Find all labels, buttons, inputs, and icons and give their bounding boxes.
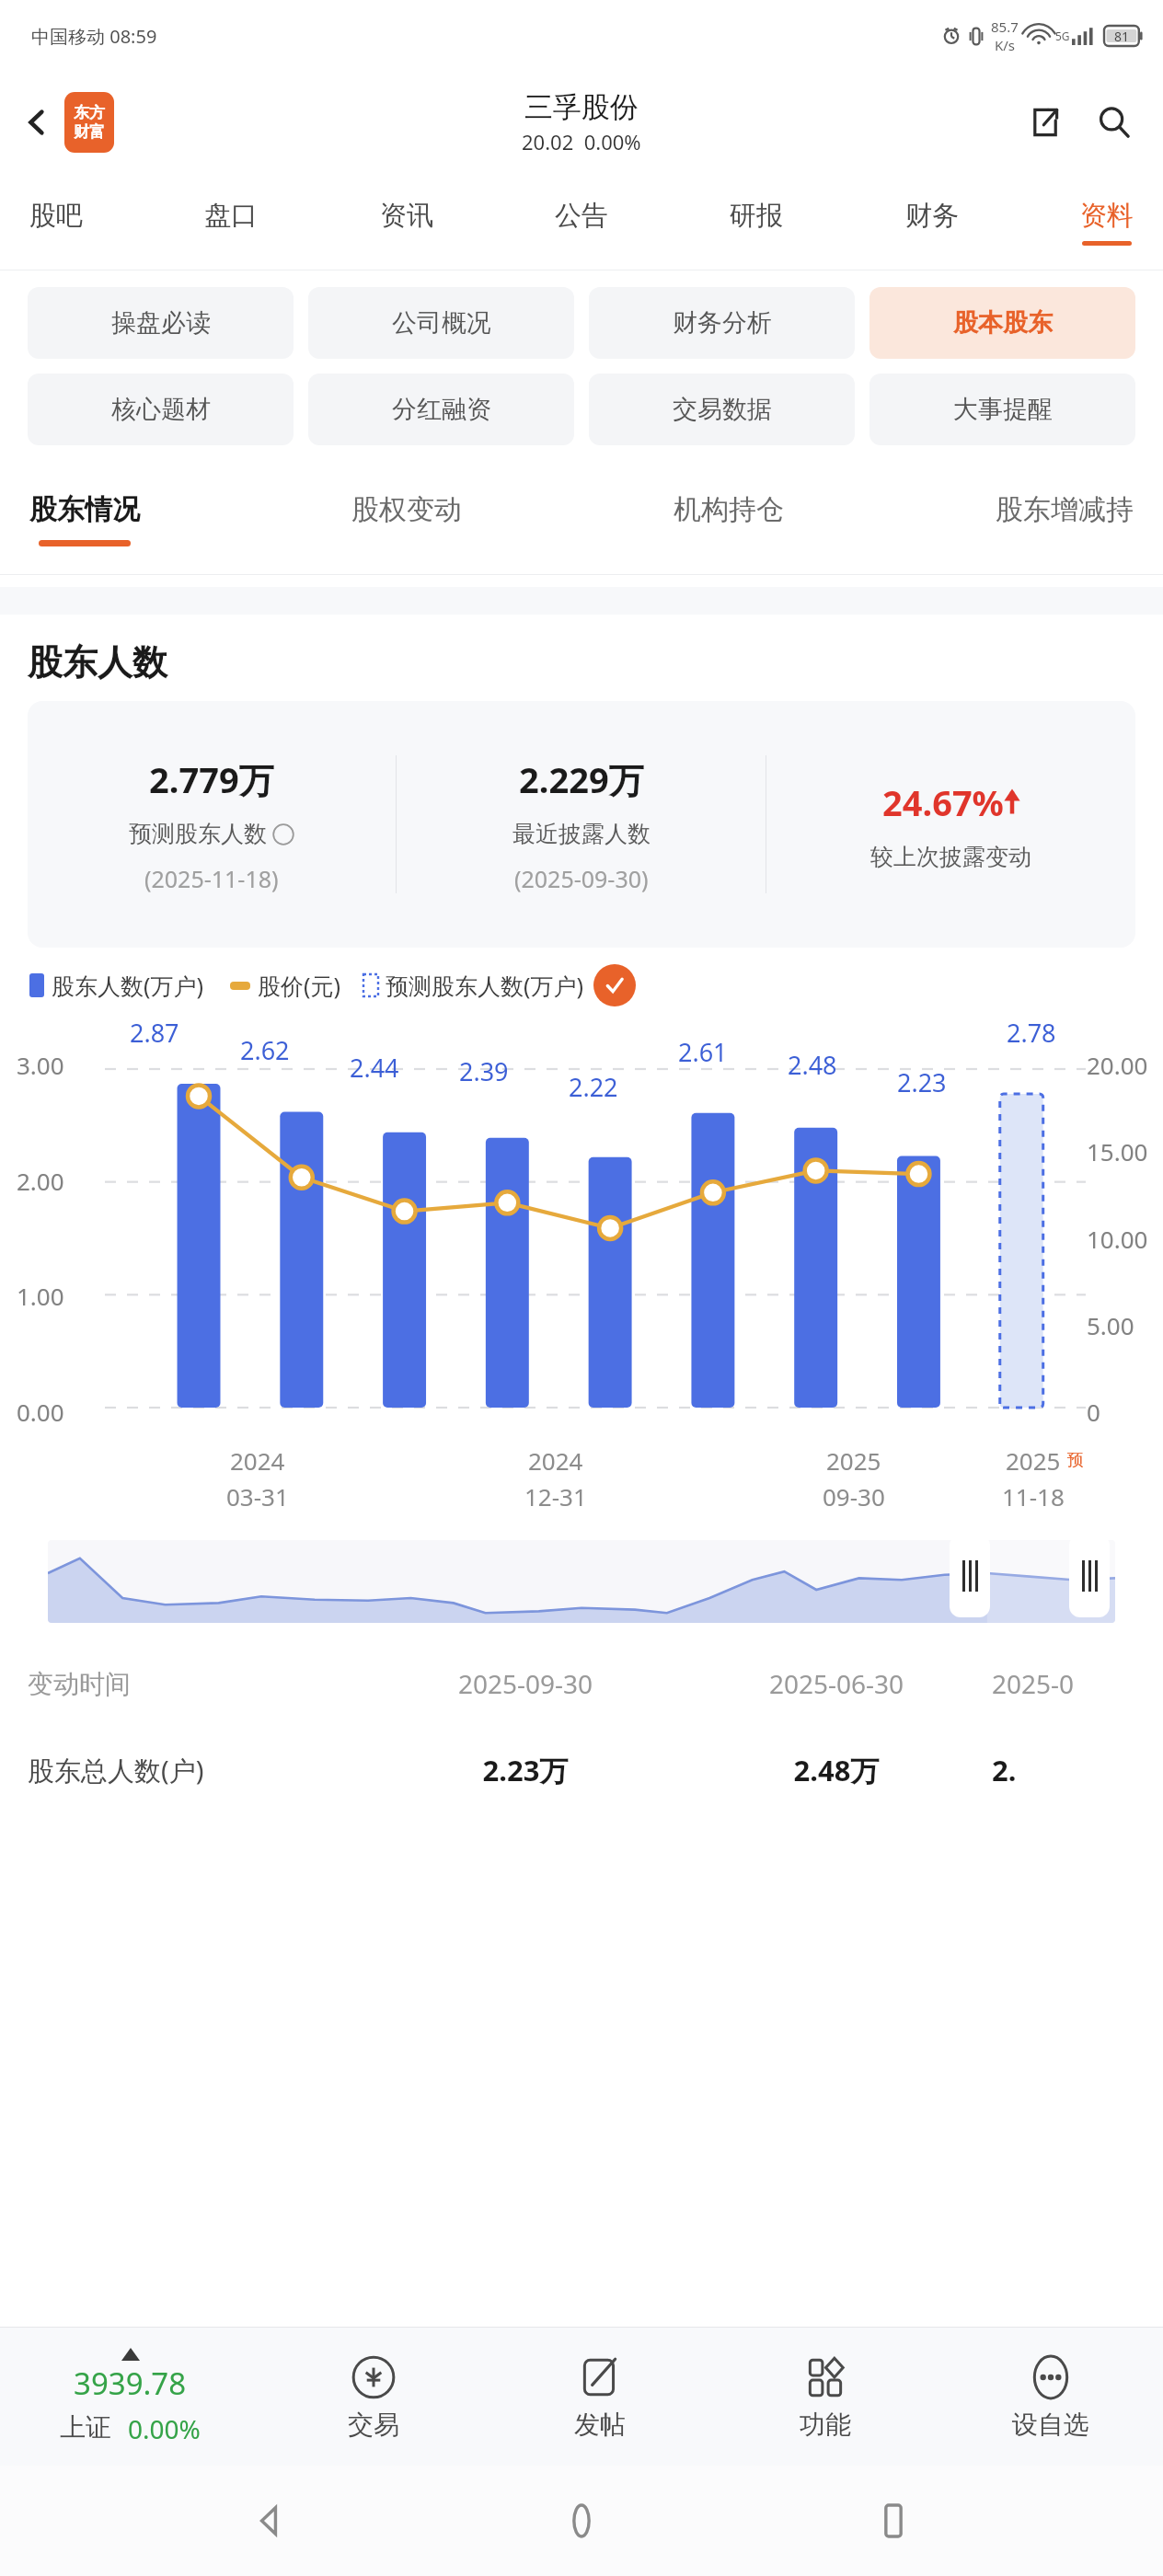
- staticText: 2.23万: [370, 1751, 681, 1789]
- staticText: 中国移动 08:59: [31, 24, 157, 49]
- staticText: 81: [1114, 28, 1130, 45]
- staticText: 预测股东人数: [129, 820, 267, 848]
- button[interactable]: 3939.78: [0, 2328, 260, 2466]
- staticText: 2.22: [569, 1070, 618, 1104]
- staticText: 24.67%: [882, 778, 1004, 826]
- button[interactable]: 分红融资: [308, 374, 574, 445]
- staticText: 15.00: [1087, 1135, 1148, 1167]
- staticText: 东方: [74, 103, 105, 122]
- staticText: 分红融资: [392, 394, 491, 425]
- staticText: 20.00: [1087, 1049, 1148, 1081]
- staticText: 2.779万: [149, 755, 274, 803]
- button[interactable]: Recents: [852, 2479, 935, 2562]
- button[interactable]: East Money: [64, 92, 114, 153]
- staticText: 机构持仓: [674, 492, 784, 527]
- button[interactable]: 股本股东: [869, 287, 1135, 359]
- staticText: 研报: [730, 199, 783, 233]
- button[interactable]: Range selector: [48, 1540, 1115, 1623]
- staticText: 5.00: [1087, 1309, 1134, 1341]
- button[interactable]: 操盘必读: [28, 287, 294, 359]
- staticText: 3.00: [17, 1049, 64, 1081]
- button[interactable]: 核心题材: [28, 374, 294, 445]
- button[interactable]: 盘口: [199, 199, 263, 246]
- staticText: 2.48万: [681, 1751, 992, 1789]
- staticText: 5G: [1055, 29, 1070, 43]
- button[interactable]: 公告: [549, 199, 614, 246]
- staticText: 2.62: [240, 1033, 290, 1067]
- staticText: 11-18: [1002, 1480, 1065, 1512]
- staticText: 股东增减持: [996, 492, 1134, 527]
- staticText: 财富: [74, 122, 105, 142]
- staticText: 三孚股份: [524, 89, 639, 125]
- button[interactable]: 研报: [724, 199, 789, 246]
- staticText: 较上次披露变动: [870, 843, 1031, 871]
- button[interactable]: Home: [540, 2479, 623, 2562]
- staticText: 预: [1067, 1450, 1084, 1471]
- button[interactable]: 设自选: [938, 2328, 1163, 2466]
- staticText: (2025-09-30): [514, 863, 649, 894]
- button[interactable]: Back: [13, 98, 61, 146]
- staticText: 资讯: [380, 199, 433, 233]
- staticText: 2.00: [17, 1165, 64, 1197]
- button[interactable]: 机构持仓: [670, 492, 788, 546]
- staticText: 2.48: [788, 1048, 837, 1082]
- button[interactable]: 大事提醒: [869, 374, 1135, 445]
- button[interactable]: Share: [1016, 94, 1073, 151]
- button[interactable]: Back: [229, 2479, 312, 2562]
- staticText: 股东情况: [29, 492, 140, 527]
- staticText: 2025-09-30: [370, 1666, 681, 1701]
- button[interactable]: 交易: [260, 2328, 487, 2466]
- staticText: 2024: [230, 1444, 285, 1477]
- button[interactable]: 财务: [900, 199, 964, 246]
- staticText: 资料: [1080, 199, 1134, 233]
- staticText: K/s: [995, 36, 1016, 54]
- staticText: 财务: [905, 199, 959, 233]
- staticText: 财务分析: [673, 307, 772, 339]
- button[interactable]: 功能: [712, 2328, 938, 2466]
- button[interactable]: Toggle forecast: [593, 964, 636, 1006]
- staticText: 2.61: [678, 1035, 728, 1069]
- button[interactable]: Drag handle: [1069, 1535, 1110, 1617]
- staticText: 股权变动: [351, 492, 462, 527]
- staticText: 1.00: [17, 1280, 64, 1312]
- staticText: 2.78: [1007, 1016, 1056, 1050]
- staticText: 2025: [1006, 1444, 1061, 1477]
- staticText: 交易: [348, 2409, 399, 2441]
- staticText: 2024: [528, 1444, 583, 1477]
- button[interactable]: 股吧: [24, 199, 88, 246]
- button[interactable]: 2.779万: [28, 701, 1135, 948]
- staticText: 变动时间: [28, 1668, 370, 1700]
- staticText: 0.00%: [128, 2411, 201, 2446]
- button[interactable]: 资料: [1075, 199, 1139, 246]
- staticText: 2025-0: [992, 1666, 1163, 1701]
- staticText: 20.02 0.00%: [522, 128, 641, 155]
- staticText: 交易数据: [673, 394, 772, 425]
- button[interactable]: 公司概况: [308, 287, 574, 359]
- staticText: 85.7: [991, 17, 1019, 36]
- staticText: 公告: [555, 199, 608, 233]
- button[interactable]: 股东情况: [26, 492, 144, 546]
- staticText: 2025: [826, 1444, 881, 1477]
- button[interactable]: 发帖: [487, 2328, 712, 2466]
- staticText: 12-31: [524, 1480, 587, 1512]
- button[interactable]: 财务分析: [589, 287, 855, 359]
- staticText: 大事提醒: [953, 394, 1053, 425]
- staticText: 设自选: [1012, 2409, 1089, 2441]
- staticText: 2.229万: [519, 755, 644, 803]
- staticText: 股价(元): [258, 970, 341, 1001]
- button[interactable]: 交易数据: [589, 374, 855, 445]
- button[interactable]: 股权变动: [348, 492, 466, 546]
- staticText: 操盘必读: [111, 307, 211, 339]
- staticText: 股东人数: [28, 640, 167, 684]
- staticText: 股吧: [29, 199, 83, 233]
- button[interactable]: 股东增减持: [992, 492, 1137, 546]
- button[interactable]: Drag handle: [950, 1535, 990, 1617]
- button[interactable]: 资讯: [374, 199, 439, 246]
- staticText: 2.39: [459, 1054, 509, 1088]
- staticText: 预测股东人数(万户): [386, 970, 584, 1001]
- staticText: 10.00: [1087, 1223, 1148, 1255]
- staticText: 股本股东: [953, 307, 1053, 339]
- staticText: 上证: [60, 2411, 111, 2444]
- button[interactable]: Search: [1086, 94, 1143, 151]
- staticText: 0: [1087, 1396, 1100, 1428]
